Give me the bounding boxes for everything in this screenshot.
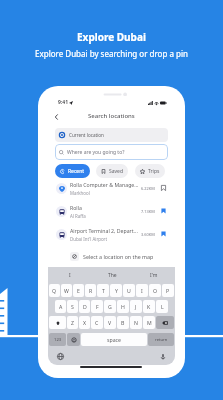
staticText: Explore Dubai by searching or drop a pin: [0, 48, 223, 59]
button[interactable]: E: [73, 284, 84, 297]
staticText: C: [95, 319, 99, 326]
button[interactable]: Trips: [135, 164, 165, 178]
button[interactable]: Backspace: [156, 316, 174, 329]
staticText: The: [108, 272, 117, 279]
staticText: M: [147, 319, 152, 326]
button[interactable]: K: [143, 300, 155, 313]
button[interactable]: Bookmark: [159, 184, 167, 192]
button[interactable]: Shift: [49, 316, 66, 329]
button[interactable]: A: [55, 300, 66, 313]
button[interactable]: Emoji: [67, 333, 80, 346]
button[interactable]: P: [162, 284, 174, 297]
button[interactable]: F: [91, 300, 103, 313]
button[interactable]: J: [130, 300, 142, 313]
button[interactable]: Where are you going to?: [55, 144, 168, 160]
staticText: B: [121, 319, 125, 326]
staticText: Al Raffa: [70, 213, 86, 219]
button[interactable]: S: [67, 300, 78, 313]
button[interactable]: V: [104, 316, 116, 329]
button[interactable]: N: [130, 316, 142, 329]
button[interactable]: space: [81, 333, 147, 346]
staticText: Saved: [109, 168, 123, 175]
staticText: Recent: [68, 168, 85, 175]
staticText: 9:41: [58, 99, 68, 106]
button[interactable]: Y: [110, 284, 122, 297]
staticText: Dubai Int'l Airport: [70, 236, 108, 242]
staticText: I: [141, 287, 143, 294]
staticText: 6.22KM: [141, 186, 155, 191]
button[interactable]: Airport Terminal 2, Depart...: [48, 226, 175, 242]
button[interactable]: Bookmark: [159, 230, 167, 238]
button[interactable]: Q: [49, 284, 60, 297]
staticText: 3.60KM: [141, 232, 155, 237]
button[interactable]: U: [123, 284, 135, 297]
staticText: R: [89, 287, 93, 294]
button[interactable]: H: [117, 300, 129, 313]
button[interactable]: C: [91, 316, 103, 329]
staticText: P: [166, 287, 170, 294]
staticText: Select a location on the map: [83, 253, 154, 260]
staticText: Z: [71, 319, 74, 326]
staticText: Explore Dubai: [77, 30, 146, 44]
staticText: J: [135, 303, 137, 310]
staticText: K: [147, 303, 151, 310]
staticText: V: [108, 319, 112, 326]
staticText: S: [71, 303, 74, 310]
button[interactable]: O: [149, 284, 161, 297]
staticText: D: [83, 303, 87, 310]
staticText: Q: [52, 287, 57, 294]
button[interactable]: Back: [51, 111, 62, 122]
button[interactable]: W: [61, 284, 72, 297]
button[interactable]: M: [143, 316, 155, 329]
staticText: A: [59, 303, 63, 310]
button[interactable]: Saved: [96, 164, 128, 178]
staticText: Current location: [69, 132, 104, 138]
button[interactable]: L: [156, 300, 168, 313]
staticText: Where are you going to?: [67, 149, 125, 156]
staticText: Y: [115, 287, 118, 294]
staticText: U: [127, 287, 131, 294]
staticText: G: [108, 303, 112, 310]
button[interactable]: Rolla Computer & Manage...: [48, 180, 175, 196]
button[interactable]: Recent: [55, 164, 90, 178]
staticText: space: [107, 336, 122, 343]
button[interactable]: R: [85, 284, 96, 297]
button[interactable]: Rolla: [48, 203, 175, 219]
staticText: L: [161, 303, 164, 310]
staticText: T: [102, 287, 105, 294]
staticText: H: [121, 303, 125, 310]
button[interactable]: Change keyboard language: [56, 352, 65, 361]
button[interactable]: 123: [49, 333, 66, 346]
staticText: Markhool: [70, 190, 90, 196]
staticText: E: [77, 287, 80, 294]
button[interactable]: Select a location on the map: [48, 248, 175, 264]
button[interactable]: G: [104, 300, 116, 313]
button[interactable]: I: [136, 284, 148, 297]
staticText: X: [83, 319, 87, 326]
button[interactable]: Z: [67, 316, 78, 329]
staticText: Search locations: [88, 112, 135, 120]
button[interactable]: Voice input: [158, 352, 167, 361]
button[interactable]: return: [148, 333, 174, 346]
button[interactable]: D: [79, 300, 90, 313]
button[interactable]: Current location: [55, 128, 168, 142]
staticText: return: [155, 337, 168, 343]
button[interactable]: Bookmark: [159, 207, 167, 215]
staticText: Trips: [148, 168, 160, 175]
staticText: I'm: [150, 272, 158, 279]
staticText: Rolla: [70, 204, 82, 211]
staticText: I: [69, 272, 71, 279]
staticText: F: [96, 303, 99, 310]
staticText: N: [134, 319, 138, 326]
button[interactable]: X: [79, 316, 90, 329]
staticText: Rolla Computer & Manage...: [70, 181, 139, 188]
staticText: 7.13KM: [141, 209, 155, 214]
staticText: W: [64, 287, 69, 294]
button[interactable]: B: [117, 316, 129, 329]
staticText: Airport Terminal 2, Depart...: [70, 227, 138, 234]
button[interactable]: T: [97, 284, 109, 297]
staticText: 123: [54, 337, 62, 343]
staticText: O: [153, 287, 158, 294]
